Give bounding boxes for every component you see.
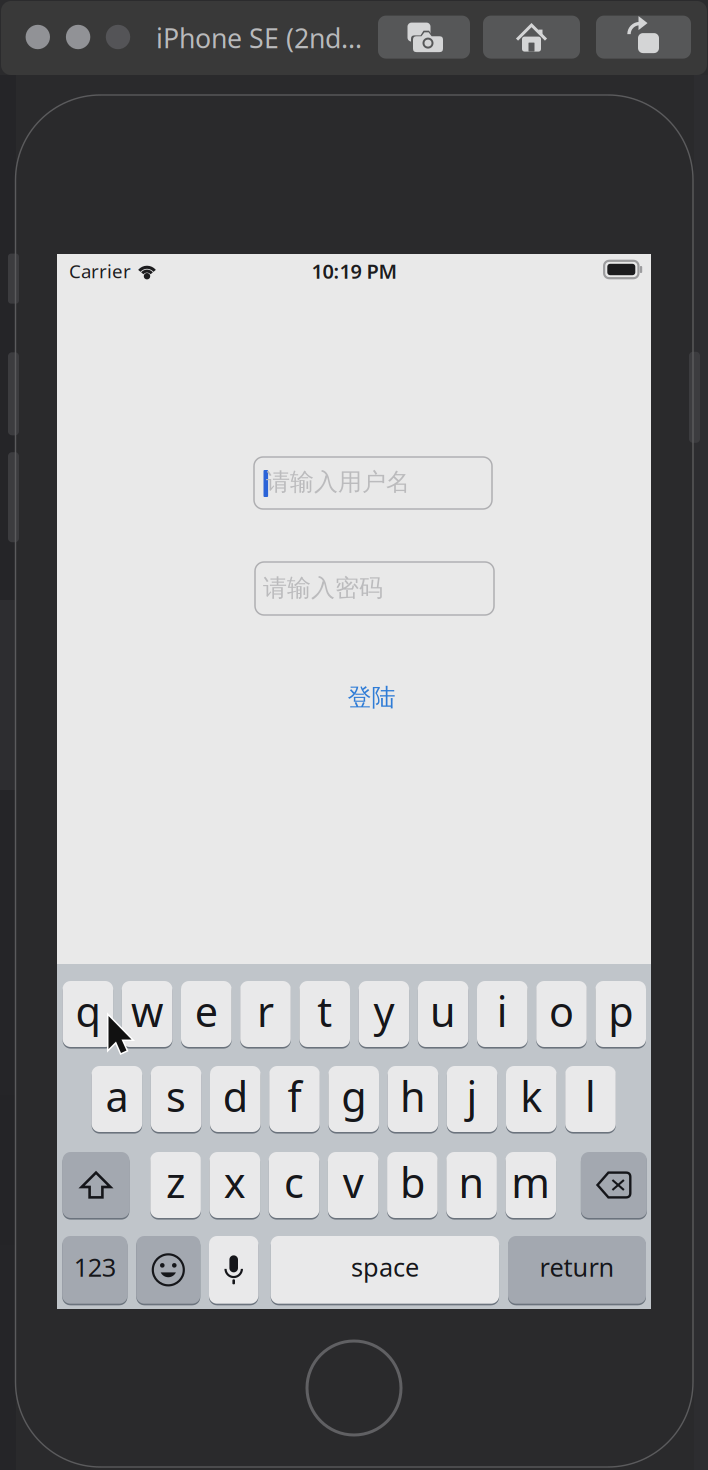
staticText: return (539, 1250, 614, 1284)
staticText: j (467, 1069, 478, 1123)
staticText: t (317, 984, 332, 1038)
button[interactable]: 登陆 (326, 680, 416, 714)
button[interactable]: v (328, 1151, 378, 1219)
button[interactable]: h (388, 1065, 438, 1133)
staticText: f (287, 1069, 301, 1123)
button[interactable]: g (328, 1065, 379, 1133)
button[interactable]: o (536, 980, 587, 1048)
button[interactable]: Screenshot (378, 16, 470, 59)
button[interactable]: space (271, 1235, 499, 1305)
staticText: q (75, 984, 100, 1038)
staticText: v (343, 1155, 364, 1209)
staticText: e (195, 984, 218, 1038)
button[interactable]: Share (596, 16, 691, 59)
staticText: d (223, 1069, 248, 1123)
staticText: w (131, 984, 163, 1038)
staticText: i (497, 984, 508, 1038)
button[interactable]: t (299, 980, 350, 1048)
button[interactable]: Delete (581, 1151, 647, 1219)
button[interactable]: n (446, 1151, 497, 1219)
button[interactable]: s (151, 1065, 201, 1133)
staticText: p (608, 984, 633, 1038)
button[interactable]: l (565, 1065, 616, 1133)
staticText: b (400, 1155, 425, 1209)
button[interactable]: return (508, 1235, 646, 1305)
staticText: iPhone SE (2nd… (156, 20, 362, 56)
button[interactable]: y (359, 980, 409, 1048)
staticText: g (341, 1069, 366, 1123)
button[interactable]: q (63, 980, 113, 1048)
button[interactable]: f (269, 1065, 320, 1133)
button[interactable]: Home (483, 16, 580, 59)
button[interactable]: i (477, 980, 528, 1048)
button[interactable]: r (240, 980, 291, 1048)
button[interactable]: b (387, 1151, 438, 1219)
button[interactable]: Shift (63, 1151, 129, 1219)
staticText: 请输入用户名 (266, 467, 410, 497)
button[interactable]: a (92, 1065, 142, 1133)
staticText: o (549, 984, 574, 1038)
button[interactable]: u (418, 980, 468, 1048)
staticText: 10:19 PM (311, 258, 397, 284)
button[interactable]: 123 (62, 1235, 127, 1305)
button[interactable]: k (506, 1065, 557, 1133)
staticText: n (459, 1155, 485, 1209)
staticText: r (257, 984, 274, 1038)
staticText: a (105, 1069, 128, 1123)
staticText: z (166, 1155, 185, 1209)
button[interactable]: w (122, 980, 172, 1048)
staticText: 请输入密码 (263, 573, 383, 603)
staticText: u (430, 984, 456, 1038)
staticText: m (511, 1155, 550, 1209)
staticText: c (284, 1155, 304, 1209)
button[interactable]: Dictation (209, 1235, 258, 1305)
button[interactable]: c (269, 1151, 319, 1219)
staticText: 登陆 (347, 683, 395, 712)
button[interactable]: z (150, 1151, 201, 1219)
button[interactable]: j (447, 1065, 497, 1133)
staticText: space (351, 1250, 419, 1284)
staticText: y (373, 984, 394, 1038)
button[interactable]: d (210, 1065, 261, 1133)
button[interactable]: m (505, 1151, 556, 1219)
staticText: Carrier (69, 259, 131, 283)
button[interactable]: e (181, 980, 232, 1048)
button[interactable]: p (595, 980, 646, 1048)
staticText: l (585, 1069, 596, 1123)
staticText: x (224, 1155, 246, 1209)
button[interactable]: x (209, 1151, 260, 1219)
staticText: s (166, 1069, 186, 1123)
staticText: h (400, 1069, 426, 1123)
staticText: k (520, 1069, 542, 1123)
button[interactable]: Emoji (136, 1235, 200, 1305)
staticText: 123 (74, 1250, 116, 1284)
